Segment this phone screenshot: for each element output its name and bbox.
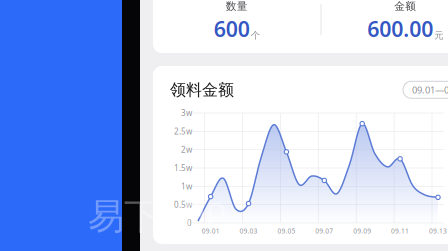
staticText: 1w <box>181 181 192 192</box>
staticText: 领料金额 <box>170 80 234 100</box>
staticText: 个 <box>251 29 260 41</box>
staticText: 09.01 <box>202 227 220 235</box>
staticText: 金额 <box>394 0 416 13</box>
staticText: 0 <box>187 218 192 228</box>
staticText: 09.09 <box>353 227 371 235</box>
button[interactable]: 09.01—09.15 <box>403 81 448 98</box>
staticText: 2.5w <box>174 126 192 137</box>
staticText: 易下APP <box>88 191 227 239</box>
staticText: 09.11 <box>391 227 409 235</box>
staticText: 600 <box>214 15 250 43</box>
staticText: 09.07 <box>315 227 333 235</box>
staticText: 09.05 <box>277 227 295 235</box>
staticText: 09.01—09.15 <box>412 84 448 96</box>
staticText: 1.5w <box>174 163 192 173</box>
staticText: 3w <box>181 108 192 118</box>
staticText: 09.13 <box>429 227 447 235</box>
staticText: 0.5w <box>174 199 192 210</box>
staticText: 数量 <box>226 0 248 13</box>
staticText: 元 <box>434 29 443 41</box>
staticText: 09.03 <box>239 227 257 235</box>
staticText: 600.00 <box>367 15 433 43</box>
staticText: 2w <box>181 144 192 155</box>
